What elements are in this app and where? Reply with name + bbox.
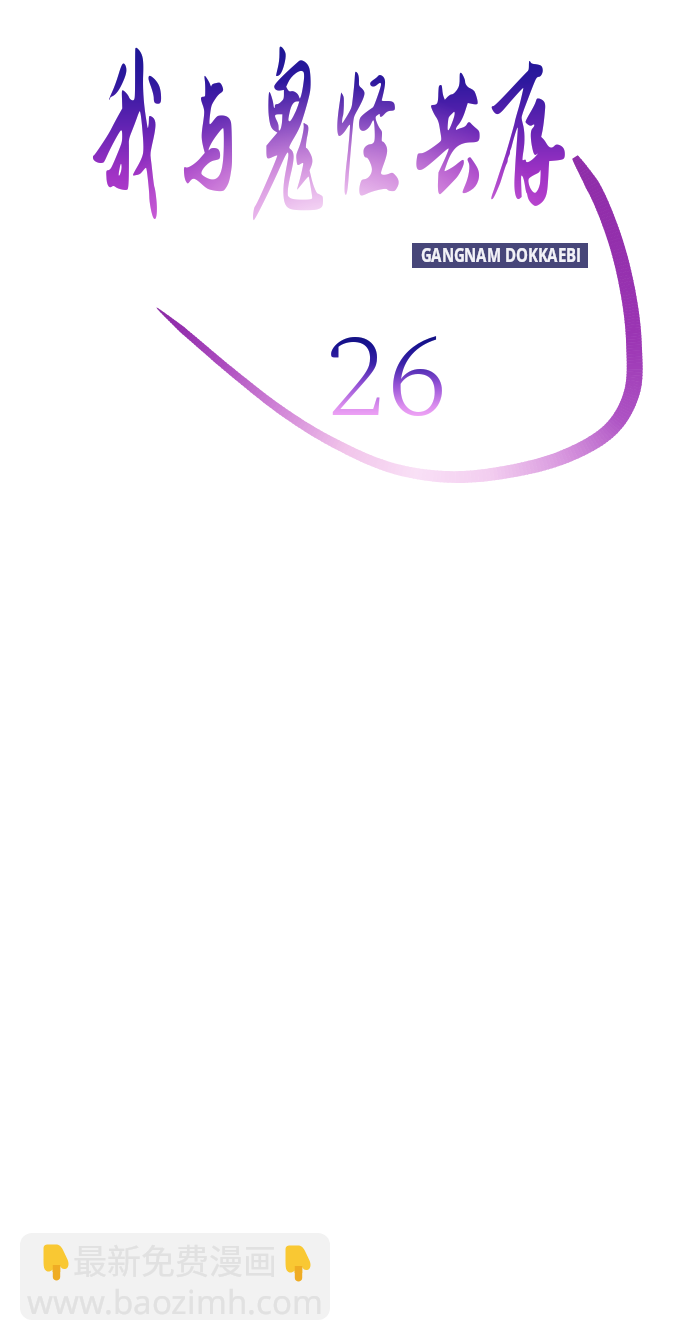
button[interactable] bbox=[412, 243, 588, 268]
button[interactable]: baozimh watermark bbox=[20, 1233, 330, 1320]
